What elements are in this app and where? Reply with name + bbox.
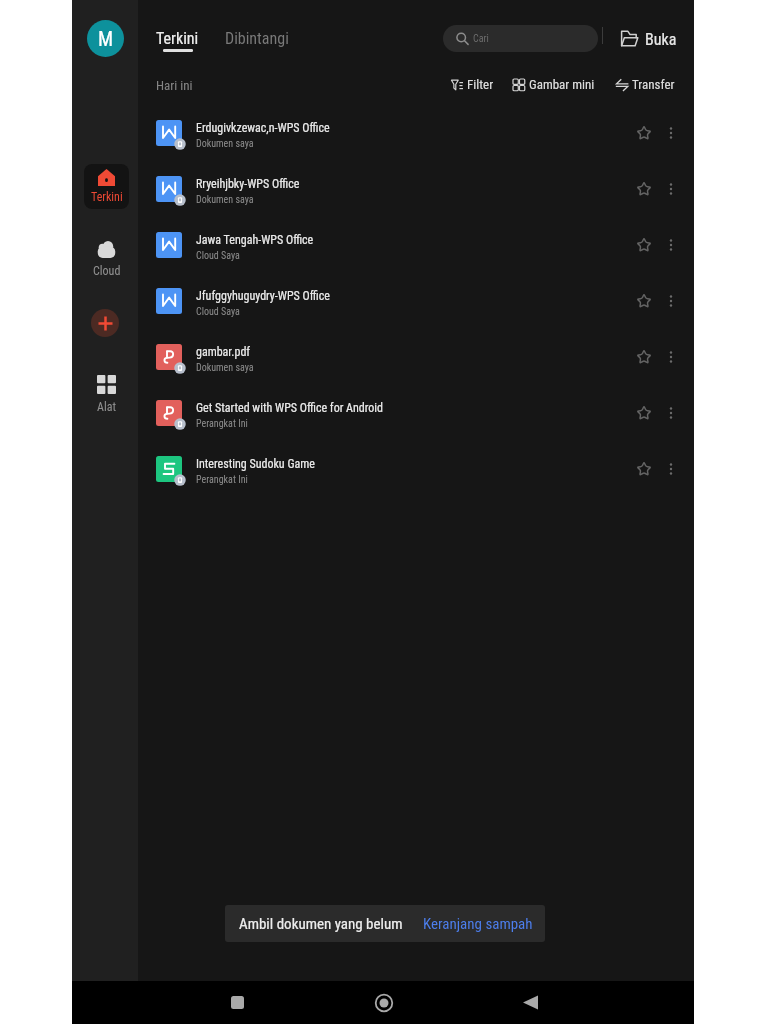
button[interactable]: Opsi lainnya xyxy=(656,174,686,204)
staticText: Interesting Sudoku Game xyxy=(196,457,315,471)
button[interactable]: Bintangi xyxy=(629,342,659,372)
staticText: gambar.pdf xyxy=(196,345,251,359)
button[interactable]: Get Started with WPS Office for Android xyxy=(138,386,760,442)
button[interactable]: Bintangi xyxy=(629,398,659,428)
button[interactable]: Jawa Tengah-WPS Office xyxy=(138,218,760,274)
button[interactable]: Interesting Sudoku Game xyxy=(138,442,760,498)
button[interactable]: Bintangi xyxy=(629,118,659,148)
button[interactable]: Rryeihjbky-WPS Office xyxy=(138,162,760,218)
button[interactable]: Terkini xyxy=(84,164,129,209)
button[interactable]: Opsi lainnya xyxy=(656,230,686,260)
button[interactable]: Erdugivkzewac,n-WPS Office xyxy=(138,106,760,162)
staticText: Filter xyxy=(467,77,494,92)
button[interactable]: Gambar mini xyxy=(513,73,595,96)
button[interactable]: Back xyxy=(508,981,552,1024)
button[interactable]: Jfufggyhuguydry-WPS Office xyxy=(138,274,760,330)
button[interactable]: Cari xyxy=(443,25,598,52)
button[interactable]: Opsi lainnya xyxy=(656,398,686,428)
staticText: Keranjang sampah xyxy=(423,915,533,933)
button[interactable]: Bintangi xyxy=(629,454,659,484)
button[interactable]: Buat dokumen baru xyxy=(91,309,119,337)
button[interactable]: Cloud xyxy=(84,233,129,278)
staticText: Cloud Saya xyxy=(196,250,240,262)
staticText: Buka xyxy=(645,30,677,49)
staticText: Hari ini xyxy=(156,78,193,93)
staticText: Get Started with WPS Office for Android xyxy=(196,401,384,415)
staticText: Cloud Saya xyxy=(196,306,240,318)
button[interactable]: Akun xyxy=(87,20,124,57)
button[interactable]: Recents xyxy=(215,981,259,1024)
staticText: Cloud xyxy=(93,264,121,278)
button[interactable]: Opsi lainnya xyxy=(656,118,686,148)
button[interactable]: Home xyxy=(362,981,406,1024)
button[interactable]: Opsi lainnya xyxy=(656,286,686,316)
button[interactable]: Buka xyxy=(615,23,682,52)
button[interactable]: Filter xyxy=(451,73,494,96)
staticText: Perangkat Ini xyxy=(196,474,248,486)
button[interactable]: Opsi lainnya xyxy=(656,454,686,484)
staticText: Dokumen saya xyxy=(196,138,254,150)
staticText: Terkini xyxy=(156,29,199,48)
button[interactable]: gambar.pdf xyxy=(138,330,760,386)
staticText: Perangkat Ini xyxy=(196,418,248,430)
staticText: Jfufggyhuguydry-WPS Office xyxy=(196,289,330,303)
staticText: Gambar mini xyxy=(529,77,595,92)
staticText: Terkini xyxy=(91,190,123,204)
staticText: Ambil dokumen yang belum xyxy=(239,915,403,933)
staticText: Cari xyxy=(473,33,489,45)
button[interactable]: Bintangi xyxy=(629,230,659,260)
button[interactable]: Dibintangi xyxy=(225,29,289,48)
button[interactable]: Bintangi xyxy=(629,286,659,316)
button[interactable]: Alat xyxy=(84,369,129,414)
staticText: Dokumen saya xyxy=(196,362,254,374)
button[interactable]: Bintangi xyxy=(629,174,659,204)
staticText: Rryeihjbky-WPS Office xyxy=(196,177,300,191)
staticText: Dokumen saya xyxy=(196,194,254,206)
button[interactable]: Terkini xyxy=(156,29,199,52)
button[interactable]: Transfer xyxy=(616,73,675,96)
button[interactable]: Ambil dokumen yang belum xyxy=(225,905,545,942)
staticText: M xyxy=(98,27,114,50)
staticText: Dibintangi xyxy=(225,29,289,48)
staticText: Erdugivkzewac,n-WPS Office xyxy=(196,121,330,135)
staticText: Jawa Tengah-WPS Office xyxy=(196,233,314,247)
button[interactable]: Opsi lainnya xyxy=(656,342,686,372)
staticText: Transfer xyxy=(632,77,675,92)
staticText: Alat xyxy=(97,400,116,414)
